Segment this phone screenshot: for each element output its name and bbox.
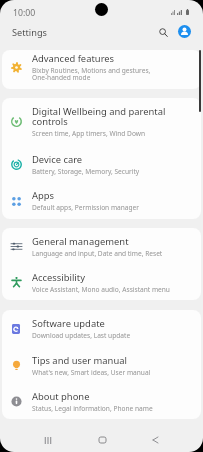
- staticText: Battery, Storage, Memory, Security: [32, 167, 140, 176]
- button[interactable]: Account: [175, 22, 194, 41]
- staticText: Language and input, Date and time, Reset: [32, 249, 163, 258]
- staticText: Status, Legal information, Phone name: [32, 404, 153, 413]
- button[interactable]: Recent apps: [34, 426, 62, 452]
- staticText: Advanced features: [32, 52, 115, 65]
- button[interactable]: Tips and user manual: [0, 347, 203, 384]
- staticText: Settings: [12, 26, 47, 39]
- button[interactable]: Device care: [0, 146, 203, 182]
- staticText: Default apps, Permission manager: [32, 203, 140, 212]
- staticText: 10:00: [13, 7, 36, 19]
- button[interactable]: Apps: [0, 182, 203, 219]
- staticText: Accessibility: [32, 271, 85, 284]
- staticText: Digital Wellbeing and parental controls: [32, 105, 166, 128]
- staticText: Download updates, Last update: [32, 331, 131, 340]
- button[interactable]: Advanced features: [0, 50, 203, 89]
- staticText: Screen time, App timers, Wind Down: [32, 129, 146, 138]
- button[interactable]: General management: [0, 228, 203, 264]
- staticText: General management: [32, 235, 129, 248]
- staticText: Software update: [32, 317, 105, 330]
- button[interactable]: Search: [153, 22, 173, 42]
- staticText: Apps: [32, 189, 55, 202]
- button[interactable]: Accessibility: [0, 264, 203, 300]
- button[interactable]: Digital Wellbeing and parental controls: [0, 98, 203, 146]
- staticText: Tips and user manual: [32, 354, 127, 367]
- staticText: Bixby Routines, Motions and gestures, On…: [32, 66, 151, 82]
- button[interactable]: About phone: [0, 383, 203, 419]
- button[interactable]: Back: [141, 426, 169, 452]
- staticText: Device care: [32, 153, 83, 166]
- staticText: What's new, Smart ideas, User manual: [32, 368, 151, 377]
- staticText: About phone: [32, 390, 90, 403]
- button[interactable]: Software update: [0, 310, 203, 347]
- staticText: Voice Assistant, Mono audio, Assistant m…: [32, 285, 170, 294]
- button[interactable]: Home: [88, 426, 116, 452]
